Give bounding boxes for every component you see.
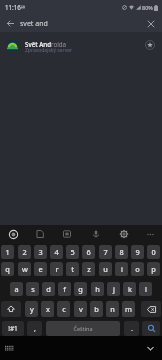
button[interactable]: . xyxy=(124,321,139,336)
button[interactable]: Hide keyboard xyxy=(142,340,158,356)
button[interactable]: h xyxy=(91,282,104,296)
staticText: u xyxy=(103,264,108,274)
button[interactable]: q xyxy=(1,262,14,276)
button[interactable]: Clipboard xyxy=(32,226,48,242)
staticText: . xyxy=(131,324,133,334)
button[interactable]: u xyxy=(99,262,112,276)
button[interactable]: z xyxy=(82,262,95,276)
staticText: l xyxy=(145,284,147,294)
staticText: 5 xyxy=(70,247,75,257)
staticText: !#1 xyxy=(8,324,18,333)
button[interactable]: , xyxy=(27,321,42,336)
staticText: a xyxy=(14,284,19,294)
button[interactable]: r xyxy=(50,262,63,276)
button[interactable]: t xyxy=(66,262,79,276)
button[interactable]: e xyxy=(34,262,47,276)
staticText: g xyxy=(78,284,83,294)
button[interactable]: 9 xyxy=(131,245,144,259)
staticText: f xyxy=(63,284,66,294)
staticText: 4 xyxy=(54,247,59,257)
button[interactable]: Search xyxy=(142,321,160,336)
staticText: j xyxy=(113,284,115,294)
staticText: b xyxy=(94,304,99,314)
staticText: 0 xyxy=(151,247,156,257)
button[interactable]: j xyxy=(107,282,120,296)
staticText: o xyxy=(135,264,140,274)
staticText: k xyxy=(128,284,132,294)
button[interactable]: 4 xyxy=(50,245,63,259)
button[interactable]: More options xyxy=(142,226,158,242)
staticText: , xyxy=(34,324,36,334)
button[interactable]: 2 xyxy=(18,245,31,259)
button[interactable]: Clear search xyxy=(142,15,159,32)
staticText: i xyxy=(121,264,123,274)
staticText: x xyxy=(46,304,50,314)
staticText: w xyxy=(22,264,28,274)
staticText: m xyxy=(125,304,132,314)
button[interactable]: Search xyxy=(5,226,21,242)
staticText: p xyxy=(151,264,156,274)
button[interactable]: n xyxy=(106,301,119,317)
staticText: Čeština xyxy=(73,325,93,332)
button[interactable]: a xyxy=(10,282,23,296)
staticText: q xyxy=(5,264,10,274)
staticText: 80% xyxy=(142,4,153,11)
button[interactable]: c xyxy=(57,301,70,317)
button[interactable]: !#1 xyxy=(2,321,24,336)
button[interactable]: l xyxy=(139,282,152,296)
staticText: 11:16 xyxy=(5,3,21,11)
button[interactable]: p xyxy=(147,262,160,276)
button[interactable]: Čeština xyxy=(46,321,120,336)
button[interactable]: b xyxy=(90,301,103,317)
staticText: 9 xyxy=(135,247,140,257)
button[interactable]: g xyxy=(74,282,87,296)
staticText: d xyxy=(46,284,51,294)
staticText: Zpravodajský server xyxy=(25,47,73,54)
staticText: h xyxy=(95,284,100,294)
staticText: r xyxy=(55,264,59,274)
button[interactable]: x xyxy=(41,301,54,317)
button[interactable]: 5 xyxy=(66,245,79,259)
staticText: z xyxy=(87,264,91,274)
button[interactable]: m xyxy=(122,301,135,317)
staticText: 6 xyxy=(86,247,91,257)
button[interactable]: k xyxy=(123,282,136,296)
button[interactable]: Settings xyxy=(116,226,132,242)
staticText: Svět And xyxy=(25,40,51,48)
staticText: y xyxy=(30,304,34,314)
button[interactable]: Switch keyboard xyxy=(1,340,17,356)
staticText: 3 xyxy=(38,247,43,257)
button[interactable]: Backspace xyxy=(141,301,161,317)
staticText: svet and xyxy=(20,19,48,29)
staticText: 8 xyxy=(119,247,124,257)
staticText: e xyxy=(38,264,43,274)
button[interactable]: d xyxy=(42,282,55,296)
button[interactable]: 7 xyxy=(99,245,112,259)
button[interactable]: 6 xyxy=(82,245,95,259)
button[interactable]: 3 xyxy=(34,245,47,259)
staticText: 2 xyxy=(22,247,27,257)
staticText: v xyxy=(79,304,83,314)
staticText: c xyxy=(62,304,66,314)
button[interactable]: w xyxy=(18,262,31,276)
staticText: 7 xyxy=(103,247,108,257)
button[interactable]: Add to favorites xyxy=(143,38,157,52)
button[interactable]: s xyxy=(26,282,39,296)
staticText: t xyxy=(71,264,74,274)
staticText: n xyxy=(110,304,115,314)
button[interactable]: i xyxy=(115,262,128,276)
button[interactable]: 8 xyxy=(115,245,128,259)
button[interactable]: Voice input xyxy=(88,226,104,242)
button[interactable]: 0 xyxy=(147,245,160,259)
button[interactable]: o xyxy=(131,262,144,276)
button[interactable]: 1 xyxy=(1,245,14,259)
button[interactable]: Svět And xyxy=(0,34,162,56)
button[interactable]: f xyxy=(58,282,71,296)
button[interactable]: Stickers xyxy=(59,226,75,242)
button[interactable]: y xyxy=(25,301,38,317)
button[interactable]: Shift xyxy=(1,301,21,317)
button[interactable]: v xyxy=(74,301,87,317)
staticText: 1 xyxy=(5,247,10,257)
button[interactable]: Back xyxy=(2,15,19,32)
staticText: s xyxy=(31,284,35,294)
